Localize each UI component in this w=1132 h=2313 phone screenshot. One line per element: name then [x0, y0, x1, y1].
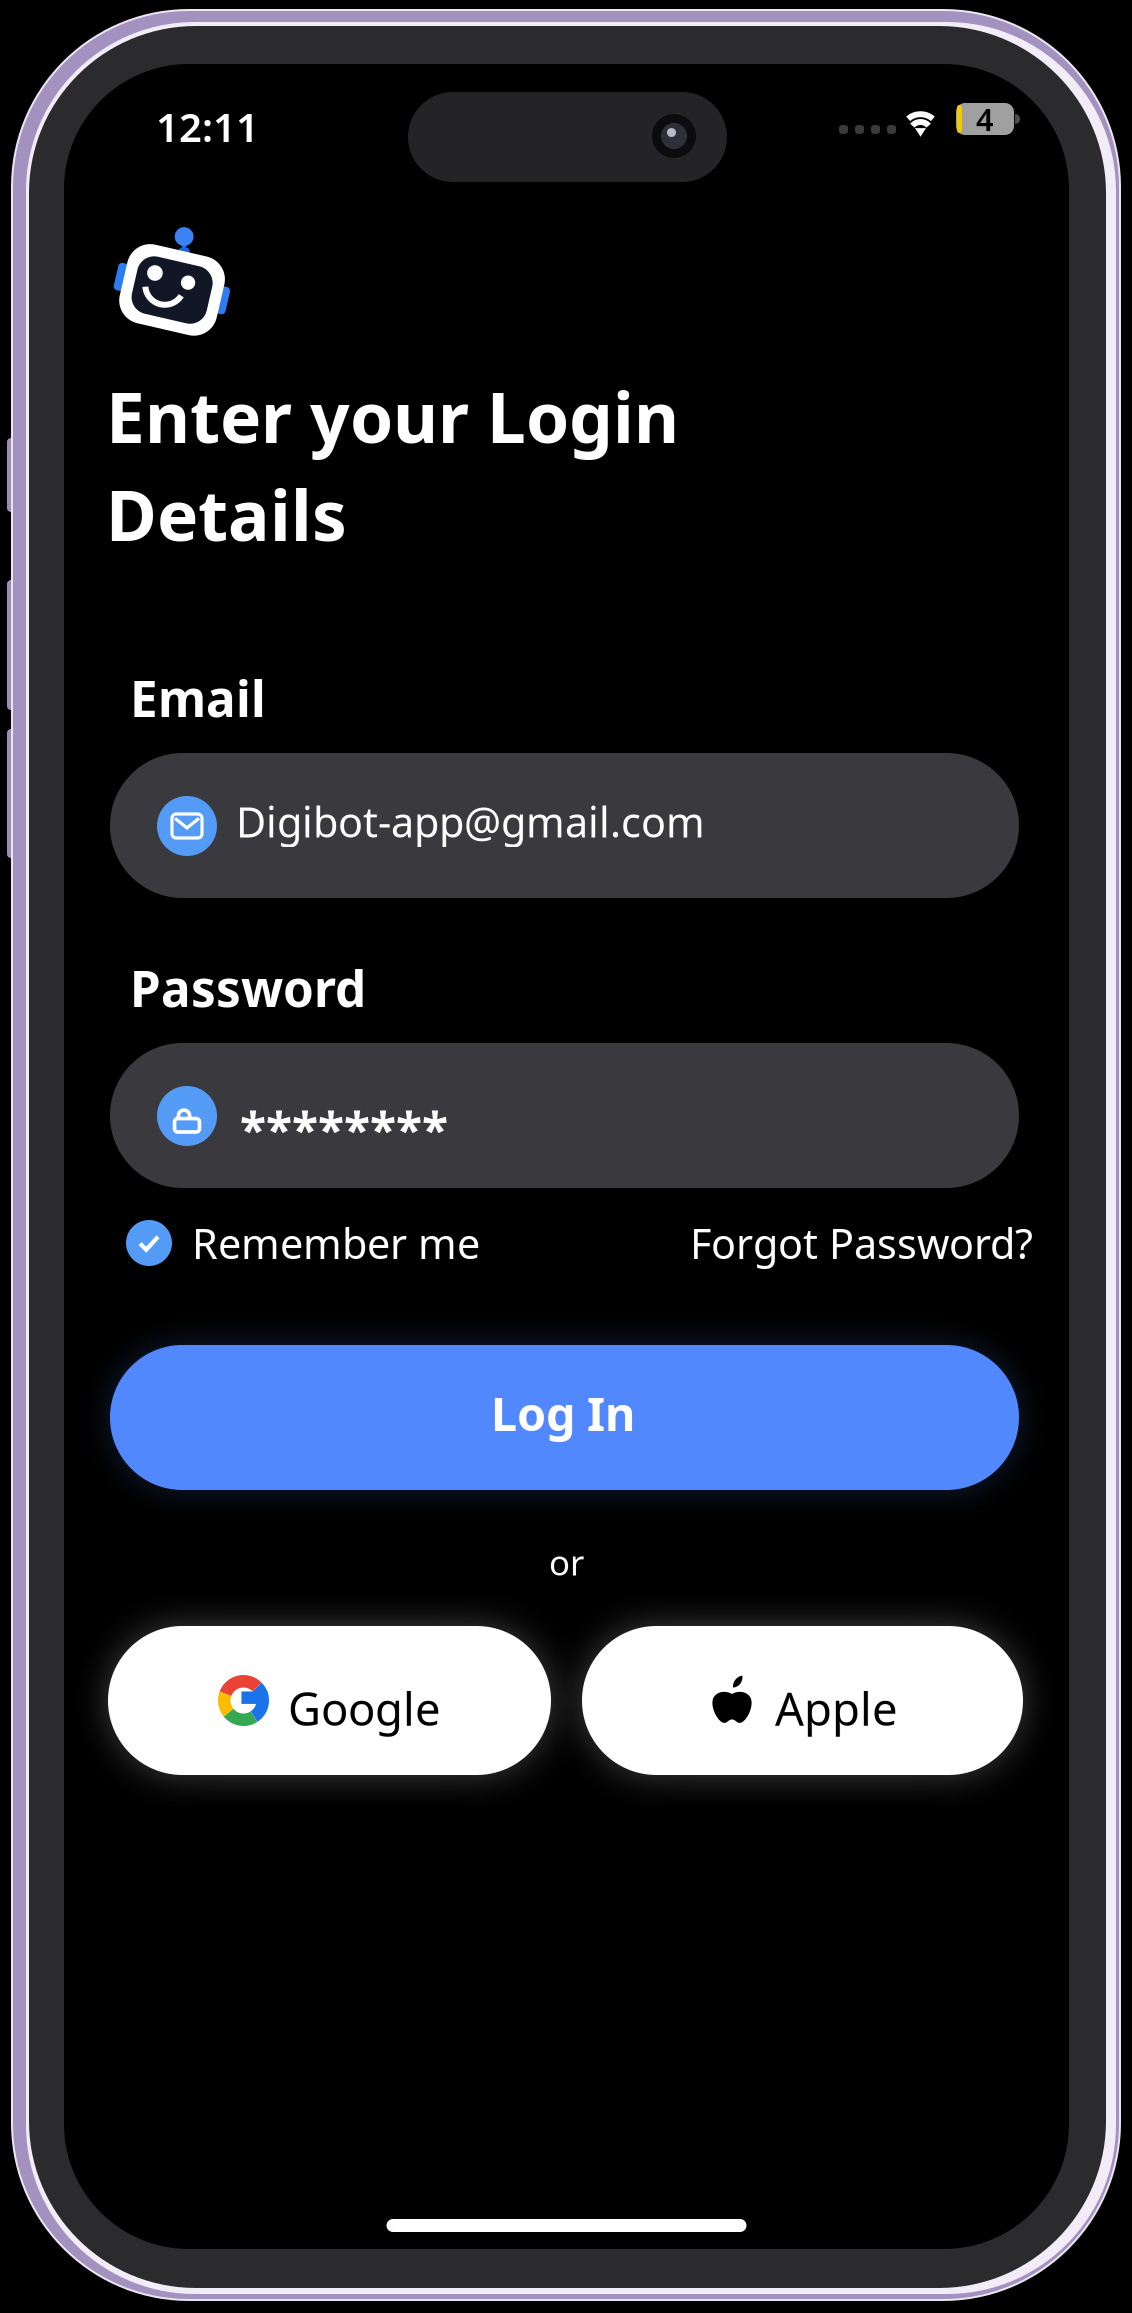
- staticText: Google: [288, 1678, 441, 1738]
- staticText: Digibot-app@gmail.com: [236, 794, 705, 849]
- staticText: Enter your Login: [106, 370, 679, 462]
- staticText: Log In: [491, 1382, 635, 1444]
- staticText: 4: [976, 99, 994, 139]
- staticText: 12:11: [156, 100, 259, 153]
- button[interactable]: Remember me: [126, 1218, 480, 1268]
- staticText: or: [549, 1539, 584, 1585]
- button[interactable]: Email field: [110, 753, 1019, 898]
- staticText: Forgot Password?: [690, 1216, 1033, 1270]
- button[interactable]: Log In: [110, 1345, 1019, 1490]
- staticText: ********: [240, 1097, 448, 1161]
- staticText: Remember me: [192, 1216, 480, 1270]
- button[interactable]: Forgot Password?: [690, 1218, 1033, 1268]
- button[interactable]: Password field: [110, 1043, 1019, 1188]
- staticText: Password: [130, 955, 366, 1020]
- button[interactable]: Apple: [582, 1626, 1023, 1775]
- staticText: Email: [130, 665, 266, 730]
- staticText: Details: [106, 468, 347, 560]
- staticText: Apple: [775, 1678, 898, 1738]
- button[interactable]: Google: [108, 1626, 551, 1775]
